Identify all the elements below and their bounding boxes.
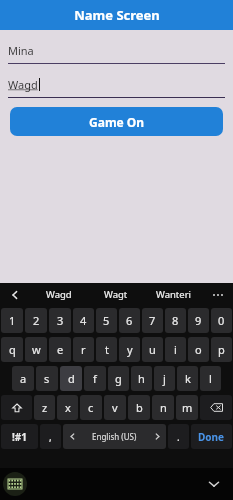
staticText: y — [127, 342, 133, 357]
staticText: 1 — [9, 313, 16, 328]
button[interactable]: a — [12, 366, 34, 391]
staticText: n — [160, 400, 167, 415]
button[interactable]: Previous suggestions — [0, 283, 30, 306]
button[interactable]: More options — [203, 283, 233, 306]
staticText: Wagd — [46, 288, 72, 301]
staticText: z — [42, 400, 48, 415]
button[interactable]: Wanteri — [145, 283, 203, 306]
staticText: 9 — [195, 313, 202, 328]
button[interactable]: 3 — [49, 308, 71, 333]
button[interactable]: Switch keyboard — [3, 472, 27, 496]
staticText: 7 — [149, 313, 156, 328]
button[interactable]: Previous language — [63, 424, 166, 449]
button[interactable]: r — [73, 337, 94, 362]
button[interactable]: y — [119, 337, 140, 362]
button[interactable]: Previous language — [63, 424, 81, 449]
staticText: x — [65, 400, 71, 415]
button[interactable]: d — [60, 366, 82, 391]
button[interactable]: 6 — [119, 308, 140, 333]
staticText: t — [105, 342, 109, 357]
button[interactable]: t — [96, 337, 117, 362]
button[interactable]: Backspace — [200, 395, 232, 420]
staticText: Name Screen — [74, 6, 160, 24]
staticText: Done — [198, 430, 225, 444]
staticText: r — [81, 342, 86, 357]
staticText: . — [177, 430, 180, 444]
button[interactable]: Wagd — [8, 75, 225, 98]
button[interactable]: !#1 — [1, 424, 38, 449]
button[interactable]: i — [165, 337, 186, 362]
staticText: , — [49, 430, 52, 444]
staticText: 2 — [33, 313, 40, 328]
button[interactable]: 1 — [1, 308, 23, 333]
staticText: 0 — [218, 313, 225, 328]
button[interactable]: k — [177, 366, 198, 391]
staticText: q — [9, 342, 16, 357]
staticText: Game On — [89, 114, 145, 130]
staticText: k — [185, 371, 191, 386]
staticText: a — [20, 371, 27, 386]
staticText: p — [218, 342, 225, 357]
staticText: !#1 — [12, 430, 27, 444]
button[interactable]: u — [142, 337, 163, 362]
button[interactable]: Game On — [10, 107, 223, 136]
button[interactable]: 7 — [142, 308, 163, 333]
button[interactable]: w — [25, 337, 47, 362]
button[interactable]: g — [108, 366, 129, 391]
button[interactable]: Wagd — [30, 283, 87, 306]
button[interactable]: Wagt — [87, 283, 145, 306]
staticText: 3 — [57, 313, 64, 328]
staticText: s — [44, 371, 50, 386]
button[interactable]: p — [211, 337, 232, 362]
button[interactable]: Name Screen — [0, 0, 233, 30]
button[interactable]: Mina — [8, 41, 225, 64]
staticText: Wanteri — [156, 288, 192, 301]
button[interactable]: e — [49, 337, 71, 362]
button[interactable]: q — [1, 337, 23, 362]
button[interactable]: c — [80, 395, 102, 420]
button[interactable]: . — [168, 424, 189, 449]
staticText: v — [112, 400, 118, 415]
staticText: Wagt — [104, 288, 128, 301]
button[interactable]: o — [188, 337, 209, 362]
staticText: 4 — [80, 313, 87, 328]
button[interactable]: m — [176, 395, 198, 420]
staticText: j — [163, 371, 166, 386]
button[interactable]: h — [131, 366, 152, 391]
button[interactable]: 4 — [73, 308, 94, 333]
button[interactable]: Done — [191, 424, 232, 449]
button[interactable]: 8 — [165, 308, 186, 333]
staticText: f — [93, 371, 97, 386]
button[interactable]: Hide keyboard — [204, 474, 224, 494]
staticText: w — [32, 342, 41, 357]
button[interactable]: l — [200, 366, 221, 391]
staticText: Mina — [8, 43, 34, 58]
button[interactable]: 0 — [211, 308, 232, 333]
staticText: m — [182, 400, 193, 415]
button[interactable]: f — [84, 366, 106, 391]
staticText: o — [195, 342, 202, 357]
staticText: i — [174, 342, 177, 357]
button[interactable]: v — [104, 395, 126, 420]
staticText: 5 — [103, 313, 110, 328]
staticText: e — [57, 342, 64, 357]
button[interactable]: n — [152, 395, 174, 420]
button[interactable]: 2 — [25, 308, 47, 333]
staticText: Wagd — [8, 77, 38, 92]
button[interactable]: 5 — [96, 308, 117, 333]
button[interactable]: j — [154, 366, 175, 391]
staticText: u — [149, 342, 156, 357]
button[interactable]: 9 — [188, 308, 209, 333]
staticText: d — [68, 371, 75, 386]
button[interactable]: z — [34, 395, 55, 420]
staticText: b — [136, 400, 143, 415]
staticText: h — [138, 371, 145, 386]
button[interactable]: x — [57, 395, 78, 420]
staticText: g — [115, 371, 122, 386]
button[interactable]: s — [36, 366, 58, 391]
staticText: c — [88, 400, 94, 415]
button[interactable]: Shift — [1, 395, 32, 420]
button[interactable]: b — [128, 395, 150, 420]
button[interactable]: Next language — [148, 424, 166, 449]
button[interactable]: , — [40, 424, 61, 449]
